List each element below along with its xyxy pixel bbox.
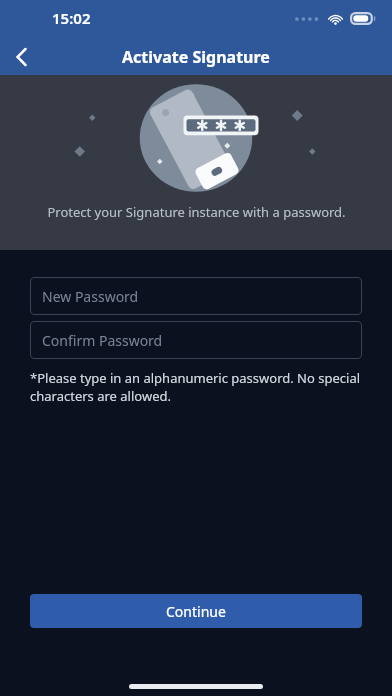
- button[interactable]: Continue: [30, 594, 362, 628]
- button[interactable]: New Password: [30, 277, 362, 315]
- staticText: Protect your Signature instance with a p…: [47, 203, 346, 221]
- staticText: 15:02: [52, 8, 91, 28]
- staticText: Continue: [166, 602, 226, 621]
- button[interactable]: Back: [0, 38, 44, 75]
- staticText: *Please type in an alphanumeric password…: [30, 369, 362, 405]
- button[interactable]: Confirm Password: [30, 321, 362, 359]
- staticText: Activate Signature: [122, 46, 270, 68]
- staticText: New Password: [42, 287, 139, 306]
- staticText: Confirm Password: [42, 331, 163, 350]
